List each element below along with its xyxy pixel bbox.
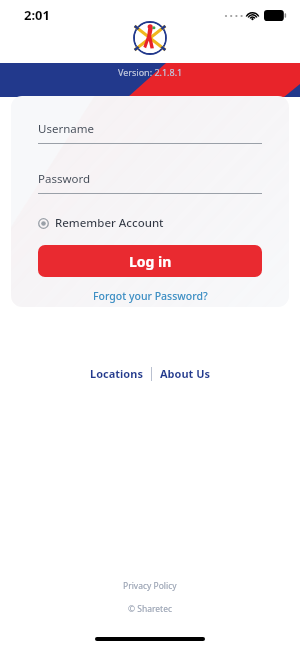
staticText: Forgot your Password? (93, 289, 208, 303)
staticText: Log in (129, 252, 172, 271)
button[interactable]: Forgot your Password? (87, 287, 214, 305)
button[interactable]: Privacy Policy (115, 578, 185, 594)
staticText: Remember Account (55, 215, 164, 231)
button[interactable]: Log in (38, 245, 262, 277)
staticText: Username (38, 121, 94, 137)
staticText: 2:01 (24, 6, 50, 24)
staticText: Version: 2.1.8.1 (118, 66, 183, 78)
button[interactable]: About Us (152, 363, 219, 384)
staticText: About Us (160, 366, 211, 381)
staticText: Privacy Policy (123, 580, 177, 592)
staticText: Password (38, 171, 91, 187)
button[interactable]: Locations (82, 363, 151, 384)
staticText: © Sharetec (128, 603, 173, 615)
staticText: Locations (90, 366, 143, 381)
button[interactable]: Username (38, 121, 262, 144)
button[interactable]: Password (38, 171, 262, 194)
button[interactable]: Remember Account (38, 215, 164, 231)
